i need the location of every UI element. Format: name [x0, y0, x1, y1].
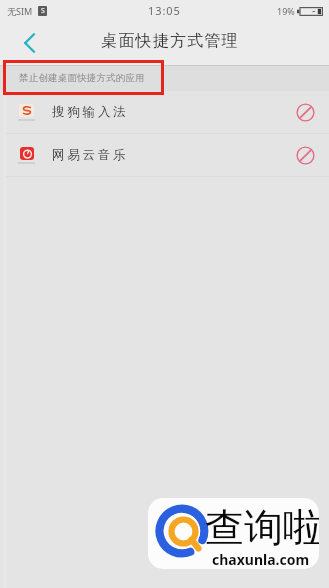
staticText: S [41, 6, 45, 16]
staticText: 查询啦 [205, 503, 319, 552]
button[interactable]: 网易云音乐 [0, 134, 329, 177]
staticText: 桌面快捷方式管理 [101, 31, 239, 51]
staticText: 13:05 [148, 3, 181, 18]
staticText: 19% [277, 5, 295, 17]
button[interactable]: 返回 [15, 29, 43, 57]
staticText: chaxunla.com [212, 550, 310, 569]
button[interactable]: 搜狗输入法 [0, 91, 329, 134]
staticText: 网易云音乐 [52, 147, 129, 163]
staticText: 禁止创建桌面快捷方式的应用 [19, 72, 145, 84]
staticText: 无SIM [7, 5, 33, 17]
staticText: 搜狗输入法 [52, 104, 129, 120]
